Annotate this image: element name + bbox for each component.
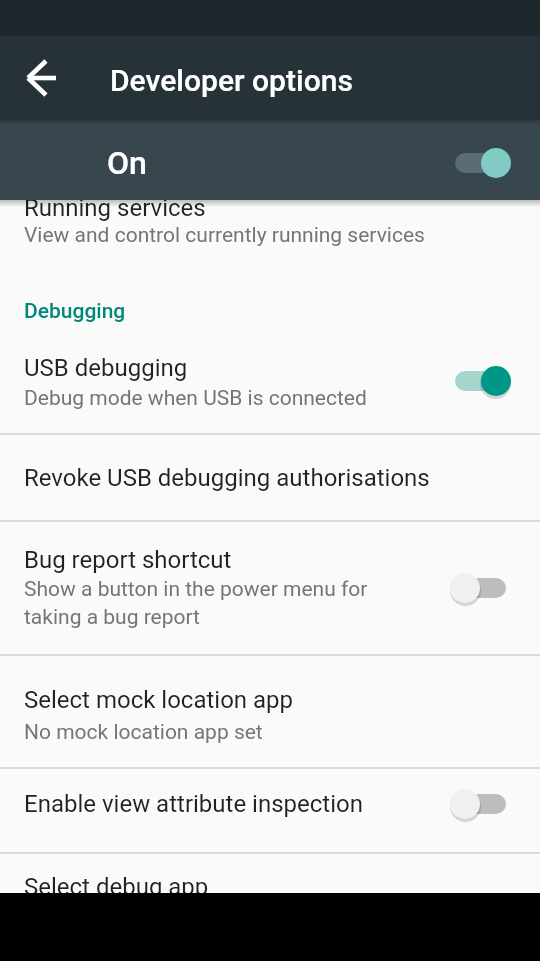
staticText: Developer options [110,63,353,98]
staticText: Debug mode when USB is connected [24,386,367,411]
staticText: Running services [24,194,206,222]
button[interactable] [0,656,540,767]
staticText: Bug report shortcut [24,546,232,574]
staticText: Select mock location app [24,686,294,714]
button[interactable] [450,572,511,604]
button[interactable] [0,331,540,433]
button[interactable] [0,36,84,120]
staticText: Show a button in the power menu for [24,577,368,602]
button[interactable] [450,788,511,820]
button[interactable] [0,522,540,654]
button[interactable] [0,435,540,520]
staticText: Select debug app [24,873,209,901]
staticText: View and control currently running servi… [24,223,425,248]
staticText: Debugging [24,299,126,324]
button[interactable] [0,200,540,262]
staticText: Revoke USB debugging authorisations [24,464,430,492]
staticText: No mock location app set [24,720,263,745]
staticText: On [107,144,147,182]
staticText: taking a bug report [24,605,200,630]
button[interactable] [0,854,540,893]
staticText: USB debugging [24,354,188,382]
button[interactable] [450,365,511,397]
button[interactable] [450,147,511,179]
staticText: Enable view attribute inspection [24,790,363,818]
button[interactable] [0,769,540,852]
